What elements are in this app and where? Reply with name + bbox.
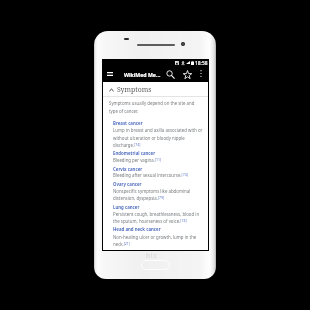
button[interactable]: Search xyxy=(162,66,178,82)
button[interactable]: Ovary cancer xyxy=(113,180,142,187)
staticText: htc xyxy=(146,251,159,260)
button[interactable]: Lung cancer xyxy=(113,203,140,210)
staticText: Lung cancer xyxy=(113,204,140,210)
staticText: WikiMed Me… xyxy=(124,71,161,78)
staticText: Lump in breast and axilla associated wit… xyxy=(113,127,203,133)
staticText: 18:58 xyxy=(195,60,208,67)
staticText: the sputum, hoarseness of voice.[74] xyxy=(113,218,187,225)
button[interactable]: Symptoms xyxy=(103,83,208,96)
staticText: Non-healing ulcer or growth, lump in the xyxy=(113,234,197,240)
button[interactable]: Endometrial cancer xyxy=(113,149,156,156)
staticText: Endometrial cancer xyxy=(113,150,156,156)
button[interactable]: More options xyxy=(193,66,208,81)
staticText: neck.[21] xyxy=(113,241,131,248)
staticText: Bleeding per vagina.[11] xyxy=(113,157,162,164)
staticText: Nonspecific symptoms like abdominal xyxy=(113,188,191,194)
staticText: Ovary cancer xyxy=(113,181,142,187)
staticText: without ulceration or bloody nipple xyxy=(113,135,185,141)
button[interactable]: Add to watchlist xyxy=(179,66,195,82)
staticText: Bleeding after sexual intercourse.[74] xyxy=(113,172,188,179)
button[interactable]: Open navigation drawer xyxy=(102,66,118,82)
button[interactable]: Head and neck cancer xyxy=(113,225,161,232)
staticText: discharge.[74] xyxy=(113,142,141,149)
button[interactable]: Cervix cancer xyxy=(113,165,143,172)
button[interactable]: Breast cancer xyxy=(113,119,143,126)
staticText: Symptoms usually depend on the site and xyxy=(109,100,195,106)
staticText: Persistent cough, breathlessness, blood … xyxy=(113,211,200,217)
staticText: Breast cancer xyxy=(113,120,143,126)
staticText: type of cancer. xyxy=(109,108,139,114)
staticText: Symptoms xyxy=(117,85,152,94)
staticText: Head and neck cancer xyxy=(113,226,161,232)
staticText: distension, dyspepsia.[79] xyxy=(113,195,165,202)
staticText: Cervix cancer xyxy=(113,166,143,172)
